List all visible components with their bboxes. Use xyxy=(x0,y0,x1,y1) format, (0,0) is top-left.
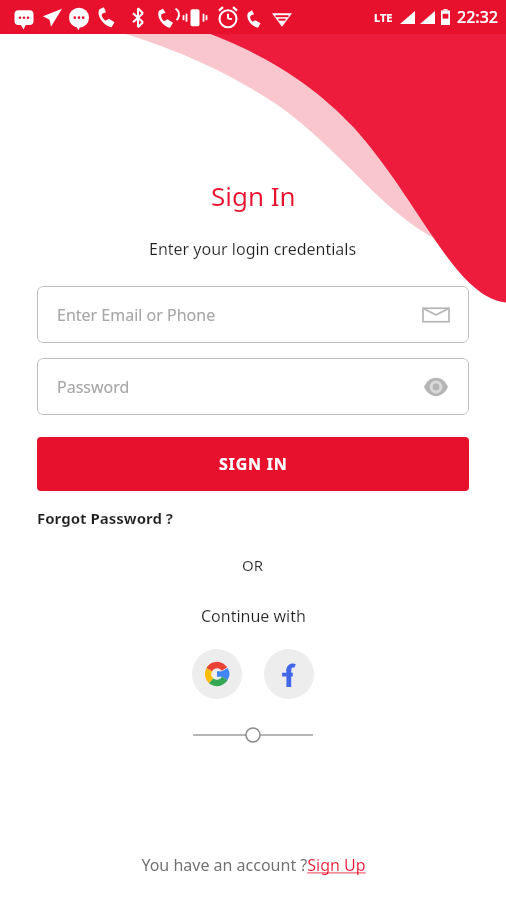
staticText: 22:32 xyxy=(457,6,498,28)
button[interactable]: Slider xyxy=(193,723,313,747)
staticText: Enter your login credentials xyxy=(149,238,357,260)
button[interactable]: SIGN IN xyxy=(37,437,469,491)
staticText: Enter Email or Phone xyxy=(57,304,423,326)
staticText: Sign In xyxy=(211,178,296,213)
staticText: Password xyxy=(57,376,423,398)
staticText: Continue with xyxy=(201,605,306,627)
staticText: Forgot Password ? xyxy=(37,508,173,528)
button[interactable]: Sign in with Google xyxy=(192,649,242,699)
staticText: You have an account ?Sign Up xyxy=(141,854,366,876)
button[interactable]: Password xyxy=(37,358,469,415)
other: Show password xyxy=(423,374,449,400)
button[interactable]: Enter Email or Phone xyxy=(37,286,469,343)
other: Email xyxy=(423,302,449,328)
button[interactable]: You have an account ?Sign Up xyxy=(0,854,506,876)
staticText: LTE xyxy=(374,10,393,25)
button[interactable]: Sign in with Facebook xyxy=(264,649,314,699)
button[interactable]: Forgot Password ? xyxy=(37,508,173,528)
staticText: OR xyxy=(242,555,264,575)
staticText: SIGN IN xyxy=(219,453,288,475)
